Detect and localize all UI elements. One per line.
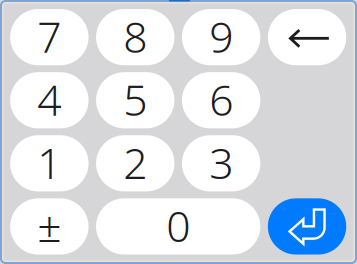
button[interactable]: 0 <box>96 198 260 254</box>
button[interactable]: 5 <box>96 72 174 128</box>
button[interactable]: 2 <box>96 135 174 191</box>
staticText: 0 <box>166 197 190 254</box>
staticText: 1 <box>37 134 61 191</box>
button[interactable]: 1 <box>10 135 88 191</box>
staticText: 6 <box>209 71 233 128</box>
button[interactable]: Backspace <box>268 9 346 65</box>
button[interactable]: ± <box>10 198 88 254</box>
button[interactable]: 4 <box>10 72 88 128</box>
staticText: 8 <box>123 8 147 64</box>
button[interactable]: 3 <box>182 135 260 191</box>
staticText: 7 <box>37 8 61 64</box>
staticText: 4 <box>37 71 61 128</box>
button[interactable]: 8 <box>96 9 174 65</box>
staticText: 9 <box>209 8 233 64</box>
staticText: 3 <box>209 134 233 191</box>
button[interactable]: 7 <box>10 9 88 65</box>
staticText: 2 <box>123 134 147 191</box>
button[interactable]: 9 <box>182 9 260 65</box>
button[interactable]: 6 <box>182 72 260 128</box>
staticText: ± <box>37 197 61 254</box>
staticText: 5 <box>123 71 147 128</box>
button[interactable]: Return <box>268 198 346 254</box>
